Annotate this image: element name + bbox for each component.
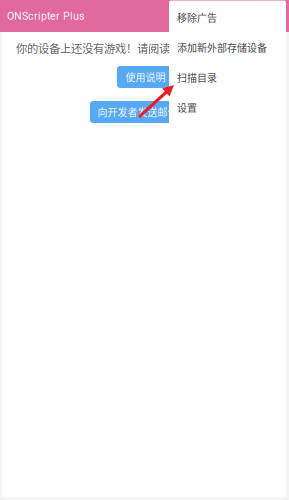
button[interactable]: 向开发者发送邮件 [90, 101, 185, 123]
button[interactable]: 设置 [169, 92, 286, 122]
staticText: 扫描目录 [177, 70, 217, 85]
button[interactable]: 添加新外部存储设备 [169, 32, 286, 62]
staticText: 移除广告 [177, 10, 217, 25]
staticText: 使用说明 [125, 70, 165, 84]
staticText: 你的设备上还没有游戏！请阅读使用说明 [16, 40, 214, 56]
staticText: 添加新外部存储设备 [177, 40, 267, 55]
staticText: ONScripter Plus [7, 10, 85, 22]
button[interactable]: 使用说明 [117, 66, 174, 88]
button[interactable]: 移除广告 [169, 2, 286, 32]
button[interactable]: 扫描目录 [169, 62, 286, 92]
staticText: 设置 [177, 100, 197, 115]
staticText: 向开发者发送邮件 [97, 105, 177, 119]
